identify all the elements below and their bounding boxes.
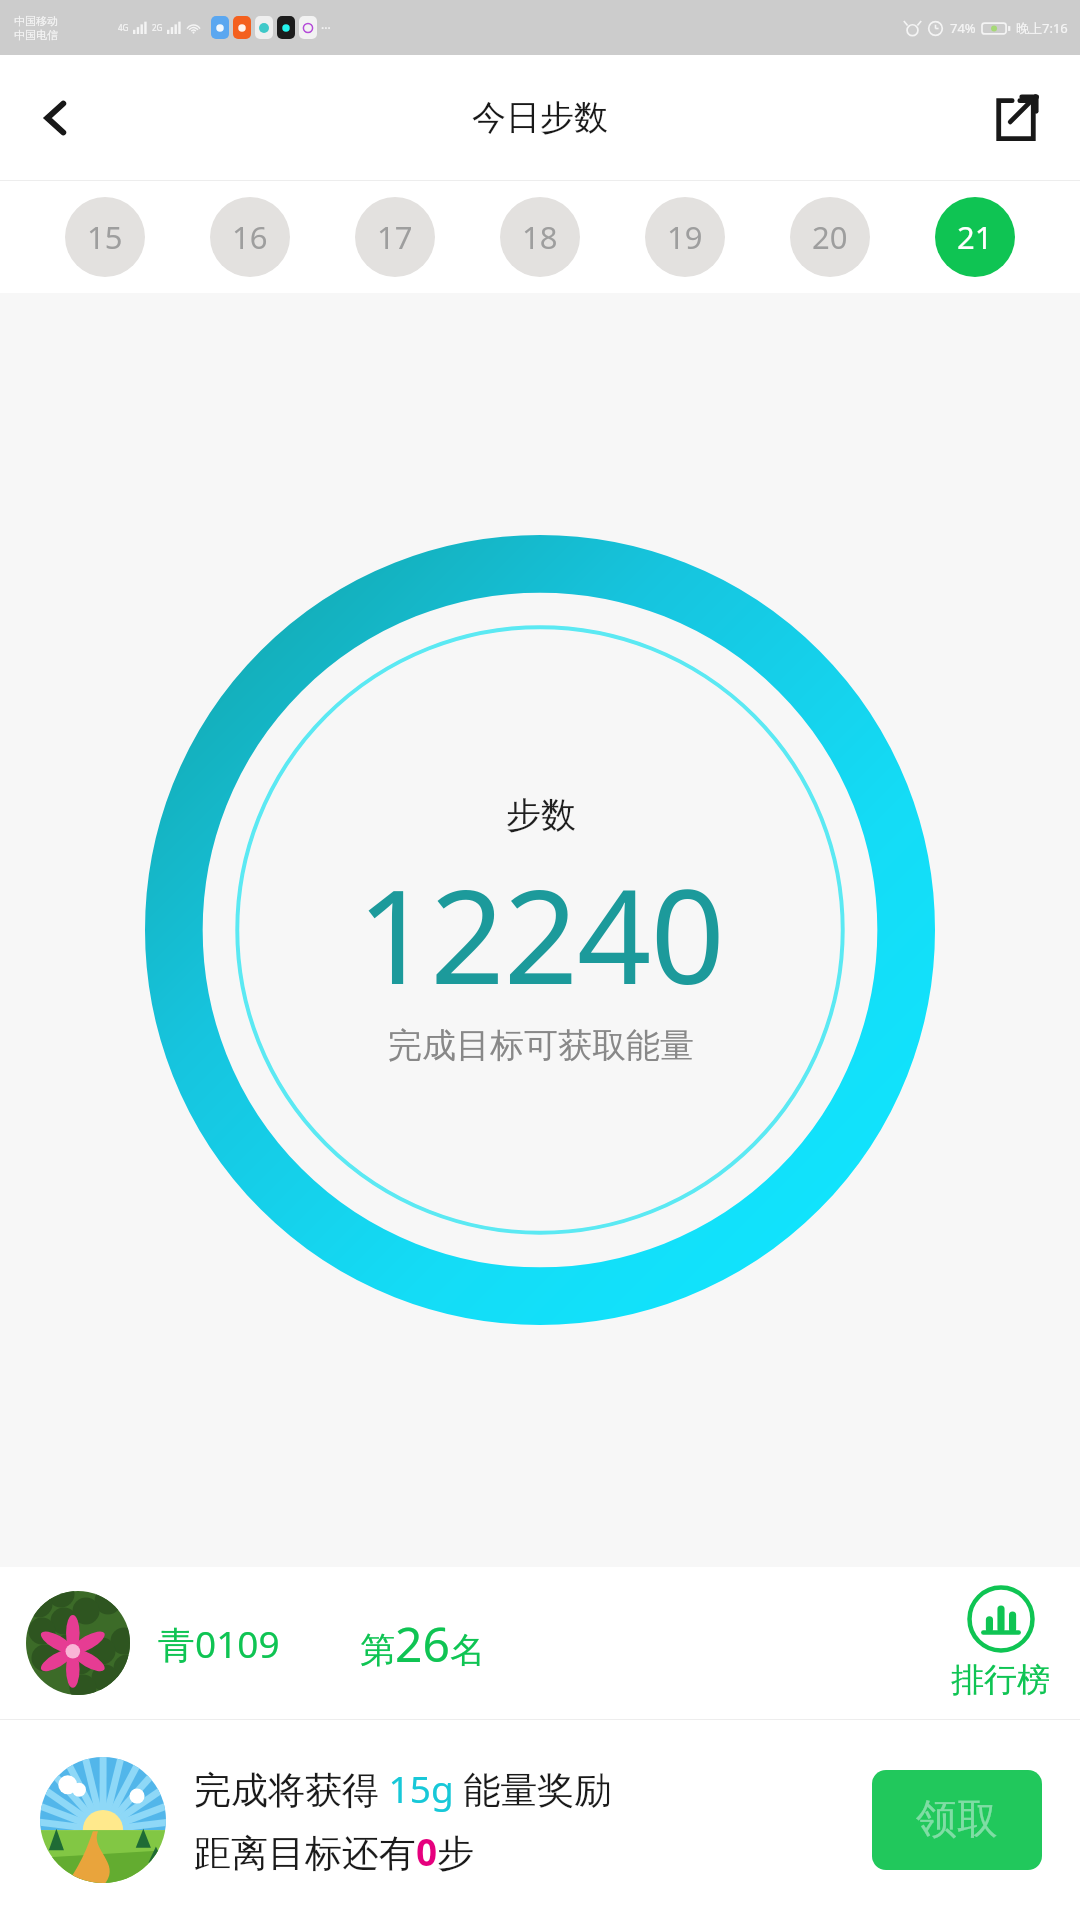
button[interactable]: 17 — [355, 197, 435, 277]
staticText: 完成目标可获取能量 — [388, 1024, 694, 1067]
button[interactable]: 19 — [645, 197, 725, 277]
staticText: 晚上7:16 — [1016, 19, 1068, 37]
staticText: 青0109 — [158, 1618, 280, 1669]
button[interactable]: 15 — [65, 197, 145, 277]
button[interactable]: 18 — [500, 197, 580, 277]
button[interactable]: Back — [14, 76, 98, 160]
button[interactable]: Share — [974, 76, 1058, 160]
staticText: 20 — [812, 216, 848, 258]
staticText: ··· — [321, 20, 331, 36]
staticText: 4G — [118, 22, 129, 33]
staticText: 今日步数 — [472, 96, 608, 139]
staticText: 19 — [667, 216, 703, 258]
staticText: 17 — [377, 216, 413, 258]
button[interactable] — [26, 1591, 130, 1695]
staticText: 领取 — [916, 1794, 998, 1846]
staticText: 16 — [232, 216, 268, 258]
staticText: 第26名 — [360, 1611, 485, 1676]
staticText: 排行榜 — [951, 1659, 1050, 1701]
staticText: 完成将获得 15g 能量奖励 — [194, 1763, 612, 1814]
staticText: 步数 — [506, 793, 576, 837]
staticText: 74% — [950, 19, 976, 37]
button[interactable]: 21 — [935, 197, 1015, 277]
button[interactable]: 16 — [210, 197, 290, 277]
staticText: 中国移动 — [14, 14, 58, 28]
button[interactable]: 20 — [790, 197, 870, 277]
staticText: 中国电信 — [14, 28, 58, 42]
button[interactable]: 领取 — [872, 1770, 1042, 1870]
staticText: 21 — [957, 216, 993, 258]
staticText: 18 — [522, 216, 558, 258]
staticText: 距离目标还有0步 — [194, 1826, 475, 1877]
staticText: 12240 — [357, 845, 724, 1022]
staticText: 15 — [87, 216, 123, 258]
staticText: 2G — [152, 22, 163, 33]
button[interactable]: 排行榜 — [951, 1585, 1050, 1701]
